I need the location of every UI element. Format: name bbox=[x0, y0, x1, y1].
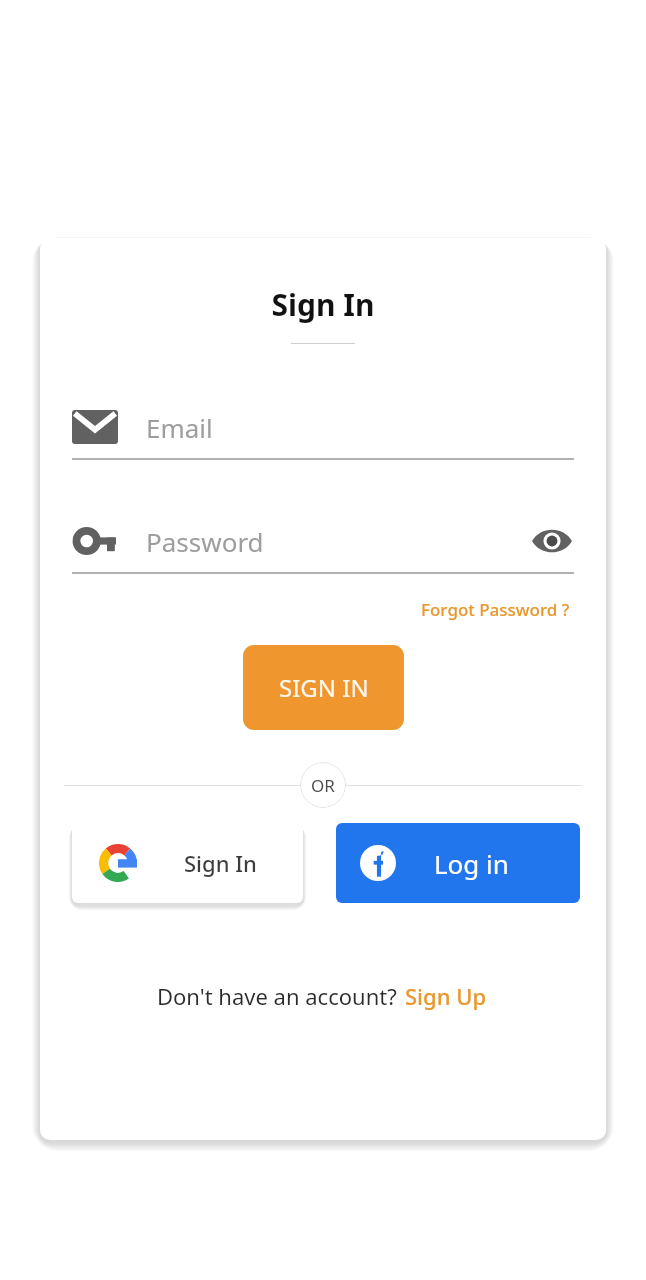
button[interactable]: Log in bbox=[336, 823, 580, 903]
staticText: Don't have an account? bbox=[157, 981, 397, 1011]
staticText: Log in bbox=[434, 846, 509, 881]
other: Password bbox=[72, 526, 116, 556]
staticText: Password bbox=[146, 524, 530, 559]
button[interactable]: Forgot Password ? bbox=[417, 594, 574, 625]
button[interactable]: Email bbox=[72, 404, 574, 460]
button[interactable]: Sign Up bbox=[397, 979, 489, 1013]
other: Email bbox=[72, 410, 118, 444]
button[interactable]: Show password bbox=[530, 519, 574, 563]
button[interactable]: Sign In bbox=[72, 823, 303, 903]
button[interactable]: SIGN IN bbox=[243, 645, 404, 730]
staticText: Sign Up bbox=[405, 981, 487, 1011]
staticText: SIGN IN bbox=[279, 671, 369, 704]
staticText: Sign In bbox=[184, 848, 257, 878]
button[interactable]: Password bbox=[72, 518, 574, 574]
staticText: OR bbox=[311, 774, 335, 797]
staticText: Forgot Password ? bbox=[421, 598, 570, 621]
staticText: Sign In bbox=[40, 284, 606, 325]
staticText: Email bbox=[146, 410, 574, 445]
